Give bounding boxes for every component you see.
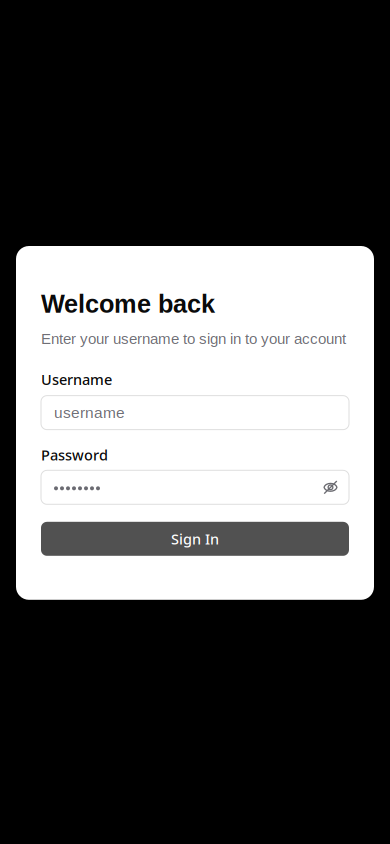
button[interactable] (41, 470, 349, 504)
button[interactable]: Show password (314, 471, 338, 504)
staticText: Welcome back (41, 290, 215, 318)
staticText: Username (41, 369, 112, 389)
staticText: Password (41, 445, 108, 465)
button[interactable]: Sign In (41, 522, 349, 556)
staticText: username (54, 404, 125, 421)
button[interactable]: username (41, 396, 349, 430)
staticText: Sign In (171, 529, 219, 549)
staticText: Enter your username to sign in to your a… (41, 330, 346, 347)
